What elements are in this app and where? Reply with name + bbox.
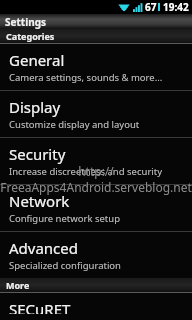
staticText: Security [9, 144, 66, 164]
button[interactable]: Network [0, 185, 192, 231]
button[interactable]: Security [0, 138, 192, 184]
staticText: General [9, 50, 65, 70]
staticText: Display [9, 97, 61, 117]
button[interactable]: General [0, 44, 192, 90]
staticText: Network [9, 191, 70, 211]
staticText: Specialized configuration [9, 259, 121, 272]
staticText: Categories [6, 30, 55, 42]
button[interactable]: Display [0, 91, 192, 137]
staticText: 19:42 [163, 0, 189, 14]
staticText: Advanced [9, 238, 79, 258]
staticText: Increase discreetness and security [9, 165, 163, 178]
staticText: SECuRET [9, 299, 71, 314]
staticText: http://FreeaApps4Android.serveblog.net [0, 163, 192, 195]
staticText: 67 [145, 0, 157, 14]
staticText: Settings [5, 15, 46, 29]
staticText: Customize display and layout [9, 118, 140, 131]
button[interactable]: Advanced [0, 232, 192, 278]
staticText: Configure network setup [9, 212, 121, 225]
staticText: More [6, 279, 30, 291]
staticText: Camera settings, sounds & more... [9, 71, 163, 84]
button[interactable]: SECuRET [0, 293, 192, 320]
